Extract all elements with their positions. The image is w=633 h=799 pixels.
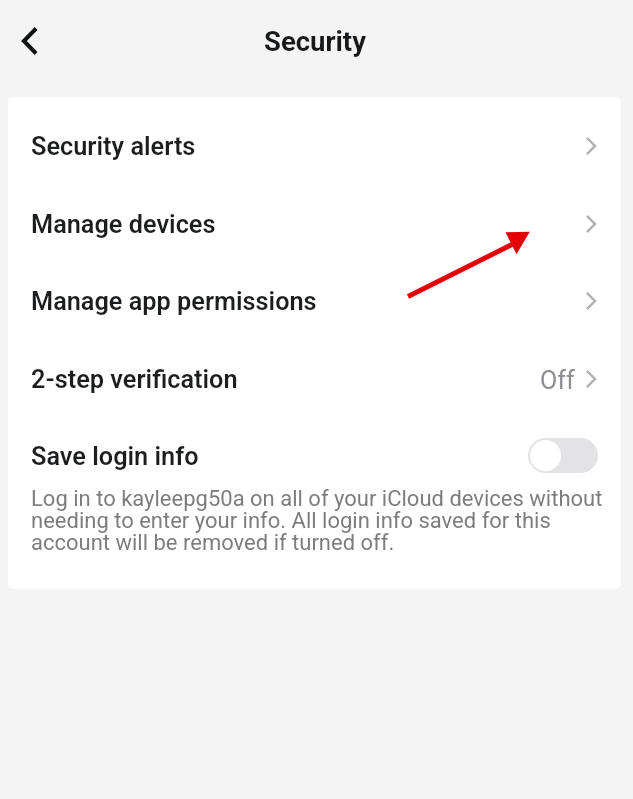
button[interactable]: Back xyxy=(8,19,52,63)
staticText: Off xyxy=(540,366,575,395)
button[interactable]: Security alerts xyxy=(8,107,621,185)
staticText: Save login info xyxy=(31,442,199,472)
button[interactable]: Manage app permissions xyxy=(8,262,621,340)
button[interactable]: Save login info toggle, off xyxy=(528,438,598,473)
button[interactable]: 2-step verification xyxy=(8,340,621,418)
staticText: Log in to kayleepg50a on all of your iCl… xyxy=(31,488,621,554)
staticText: Manage devices xyxy=(31,210,216,240)
staticText: 2-step verification xyxy=(31,365,238,395)
staticText: Manage app permissions xyxy=(31,287,317,317)
staticText: Security alerts xyxy=(31,132,196,162)
button[interactable]: Save login info xyxy=(8,417,621,495)
staticText: Security xyxy=(264,25,367,57)
button[interactable]: Manage devices xyxy=(8,185,621,263)
